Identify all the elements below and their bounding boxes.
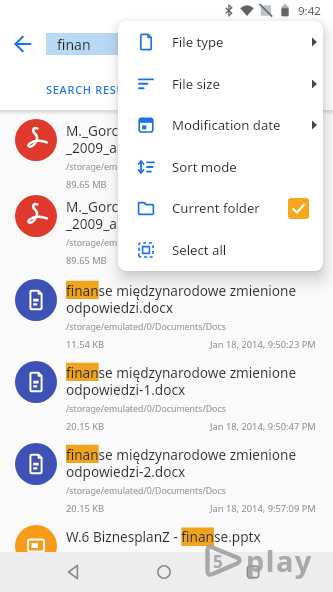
- staticText: Select all: [172, 241, 227, 259]
- staticText: M._Gorczyńska _2009_analiza: [66, 197, 162, 233]
- button[interactable]: Sort mode: [118, 146, 323, 188]
- staticText: finanse międzynarodowe zmienione odpowie…: [66, 363, 297, 399]
- button[interactable]: File type: [118, 21, 323, 63]
- staticText: SEARCH RESULTS: [46, 82, 146, 97]
- staticText: 11.54 KB: [66, 338, 104, 351]
- staticText: 89.65 MB: [66, 178, 107, 191]
- staticText: 20.15 KB: [66, 420, 104, 433]
- staticText: /storage/emulated/0/Docum: [66, 161, 185, 173]
- button[interactable]: finanse międzynarodowe zmienione odpowie…: [0, 348, 333, 430]
- button[interactable]: W.6 BiznesplanZ - finanse.pptx: [0, 512, 333, 592]
- staticText: finan: [57, 35, 91, 54]
- button[interactable]: Modification date: [118, 104, 323, 146]
- staticText: /storage/emulated/0/Documents/Docs: [66, 321, 226, 333]
- staticText: Current folder: [172, 199, 260, 217]
- staticText: Sort mode: [172, 158, 237, 176]
- staticText: File size: [172, 75, 220, 93]
- staticText: finanse międzynarodowe zmienione odpowie…: [66, 281, 297, 317]
- staticText: 5: [213, 550, 223, 573]
- button[interactable]: Select all: [118, 229, 323, 271]
- staticText: 9:42: [298, 3, 321, 19]
- button[interactable]: M._Gorczyńska _2009_analiza: [0, 106, 333, 188]
- staticText: Jan 18, 2014, 9:57:09 PM: [210, 502, 316, 515]
- staticText: M._Gorczyńska _2009_analiza: [66, 121, 162, 157]
- staticText: play: [246, 541, 313, 580]
- button[interactable]: M._Gorczyńska _2009_analiza: [0, 182, 333, 264]
- staticText: finanse międzynarodowe zmienione odpowie…: [66, 445, 297, 481]
- staticText: /storage/emulated/0/Docum: [66, 237, 185, 249]
- staticText: 20.15 KB: [66, 502, 104, 515]
- button[interactable]: finanse międzynarodowe zmienione odpowie…: [0, 266, 333, 348]
- button[interactable]: [243, 562, 263, 582]
- button[interactable]: finanse międzynarodowe zmienione odpowie…: [0, 430, 333, 512]
- staticText: W.6 BiznesplanZ - finanse.pptx: [66, 527, 261, 546]
- button[interactable]: Current folder: [118, 187, 323, 229]
- staticText: 89.65 MB: [66, 254, 107, 267]
- button[interactable]: [154, 562, 174, 582]
- staticText: /storage/emulated/0/Documents/Docs: [66, 485, 226, 497]
- staticText: File type: [172, 33, 224, 51]
- staticText: Jan 18, 2014, 9:50:47 PM: [210, 420, 316, 433]
- staticText: /storage/emulated/0/Documents/Docs: [66, 403, 226, 415]
- staticText: Modification date: [172, 116, 281, 134]
- button[interactable]: [64, 562, 84, 582]
- button[interactable]: File size: [118, 63, 323, 105]
- staticText: Jan 18, 2014, 9:50:23 PM: [210, 338, 316, 351]
- button[interactable]: [14, 35, 32, 53]
